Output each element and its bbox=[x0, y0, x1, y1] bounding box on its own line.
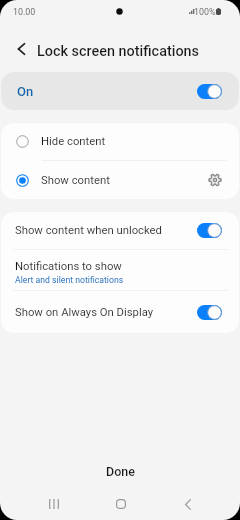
button[interactable]: Notifications to show bbox=[1, 250, 239, 290]
button[interactable]: Recent apps bbox=[34, 491, 74, 517]
staticText: Show on Always On Display bbox=[15, 306, 154, 319]
staticText: Alert and silent notifications bbox=[15, 275, 124, 285]
button[interactable]: On bbox=[1, 72, 239, 110]
staticText: On bbox=[17, 84, 34, 99]
button[interactable]: Done bbox=[0, 456, 240, 486]
staticText: Notifications to show bbox=[15, 260, 122, 273]
button[interactable]: Notification settings bbox=[208, 173, 222, 187]
staticText: Done bbox=[106, 464, 135, 479]
staticText: 100% bbox=[194, 7, 216, 17]
button[interactable]: Home bbox=[101, 491, 141, 517]
staticText: Hide content bbox=[41, 135, 106, 148]
staticText: Show content bbox=[41, 174, 110, 187]
button[interactable]: Navigate up bbox=[10, 38, 32, 60]
button[interactable]: Show content bbox=[1, 161, 239, 199]
staticText: 10.00 bbox=[13, 7, 36, 17]
staticText: Show content when unlocked bbox=[15, 224, 162, 237]
button[interactable]: Hide content bbox=[1, 123, 239, 160]
button[interactable]: Show on Always On Display bbox=[1, 291, 239, 333]
button[interactable]: Show content when unlocked bbox=[1, 212, 239, 249]
staticText: Lock screen notifications bbox=[37, 43, 200, 60]
button[interactable]: Back bbox=[168, 491, 208, 517]
